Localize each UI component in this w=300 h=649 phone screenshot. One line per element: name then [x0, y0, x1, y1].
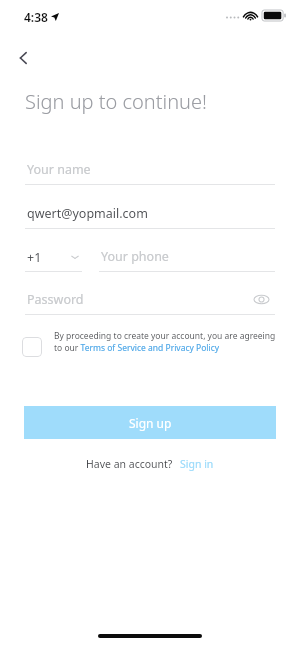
staticText: 4:38 [24, 9, 48, 25]
staticText: Sign up [129, 415, 172, 431]
button[interactable]: Back [4, 38, 44, 78]
button[interactable]: Your name [27, 161, 275, 178]
button[interactable]: Password [27, 291, 239, 308]
button[interactable]: +1 [25, 245, 82, 269]
staticText: +1 [27, 249, 42, 266]
button[interactable]: Sign up [24, 406, 276, 439]
other: Accept terms [22, 337, 42, 357]
staticText: Have an account? [86, 457, 173, 471]
staticText: Sign in [180, 457, 214, 471]
staticText: Sign up to continue! [25, 88, 207, 115]
button[interactable]: Accept terms [22, 330, 278, 354]
button[interactable]: Show password [247, 285, 275, 313]
button[interactable]: Sign in [180, 457, 214, 471]
staticText: By proceeding to create your account, yo… [54, 330, 278, 354]
button[interactable]: Your phone [101, 248, 275, 265]
button[interactable]: qwert@yopmail.com [27, 205, 275, 222]
